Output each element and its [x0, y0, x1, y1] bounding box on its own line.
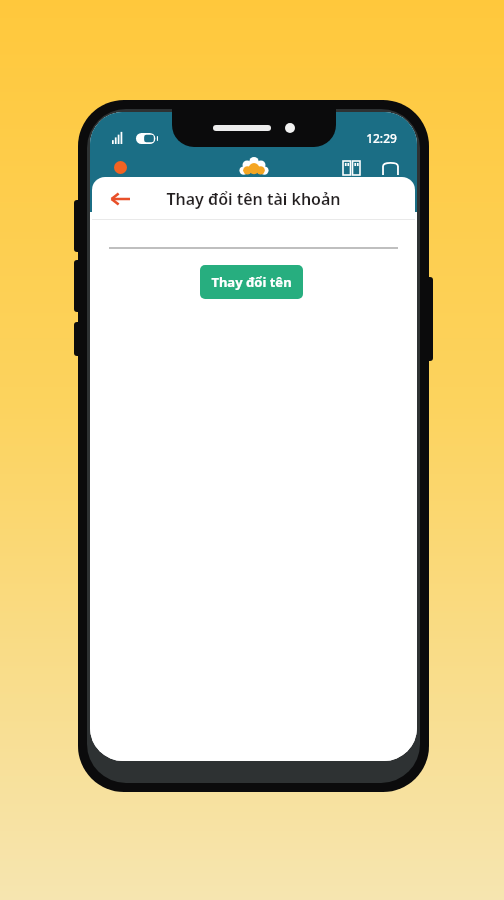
staticText: Thay đổi tên tài khoản	[166, 188, 341, 210]
button[interactable]: Thay đổi tên	[200, 265, 303, 299]
button[interactable]: Compare	[343, 161, 360, 175]
button[interactable]: Menu	[114, 161, 127, 174]
staticText: 12:29	[366, 130, 397, 146]
button[interactable]: Back	[102, 182, 136, 216]
staticText: Thay đổi tên	[211, 273, 292, 291]
button[interactable]: Cart	[382, 160, 399, 175]
